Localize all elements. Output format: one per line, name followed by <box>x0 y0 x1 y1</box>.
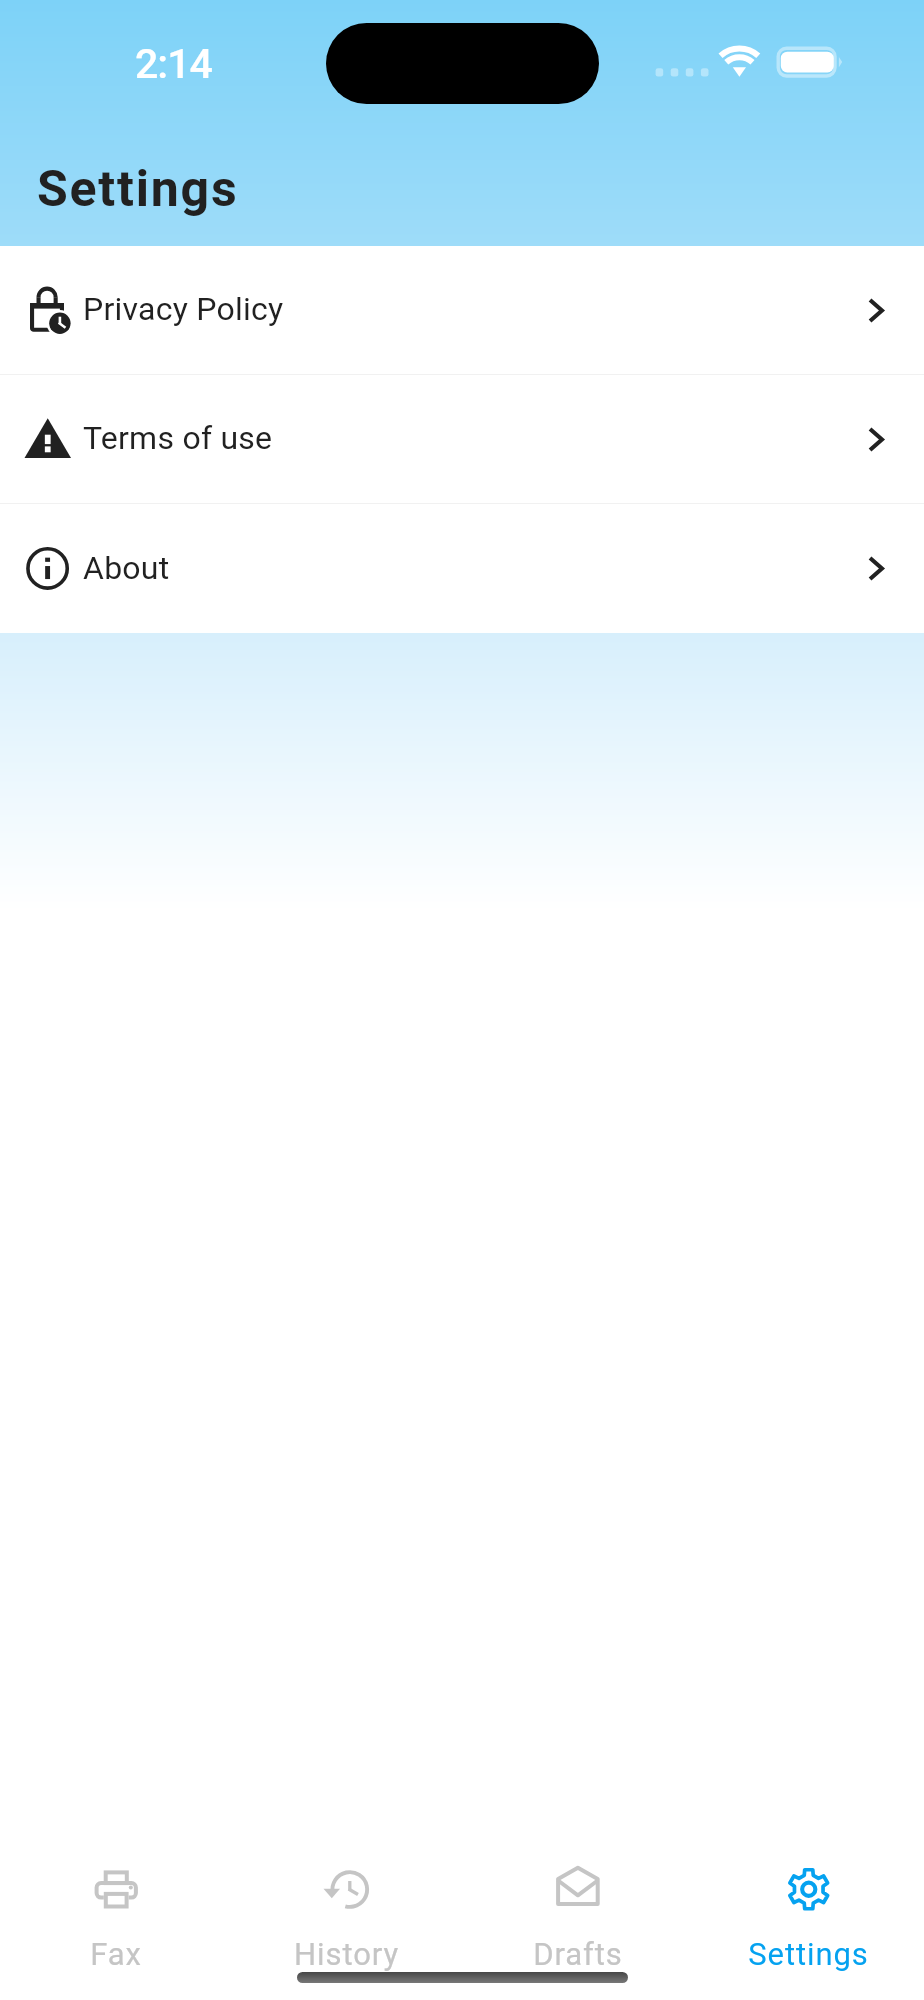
staticText: History <box>294 1936 399 1972</box>
staticText: Settings <box>37 160 239 219</box>
staticText: About <box>83 549 170 587</box>
button[interactable]: Fax <box>0 1820 231 2000</box>
staticText: Privacy Policy <box>83 290 284 328</box>
button[interactable]: Terms of use <box>0 375 924 503</box>
button[interactable]: History <box>231 1820 462 2000</box>
button[interactable]: Privacy Policy <box>0 246 924 374</box>
button[interactable]: Drafts <box>462 1820 693 2000</box>
staticText: Fax <box>90 1936 142 1972</box>
staticText: 2:14 <box>135 40 212 88</box>
staticText: Drafts <box>533 1936 623 1972</box>
button[interactable]: About <box>0 504 924 633</box>
button[interactable]: Settings <box>693 1820 924 2000</box>
staticText: Settings <box>748 1936 869 1972</box>
staticText: Terms of use <box>83 419 273 457</box>
